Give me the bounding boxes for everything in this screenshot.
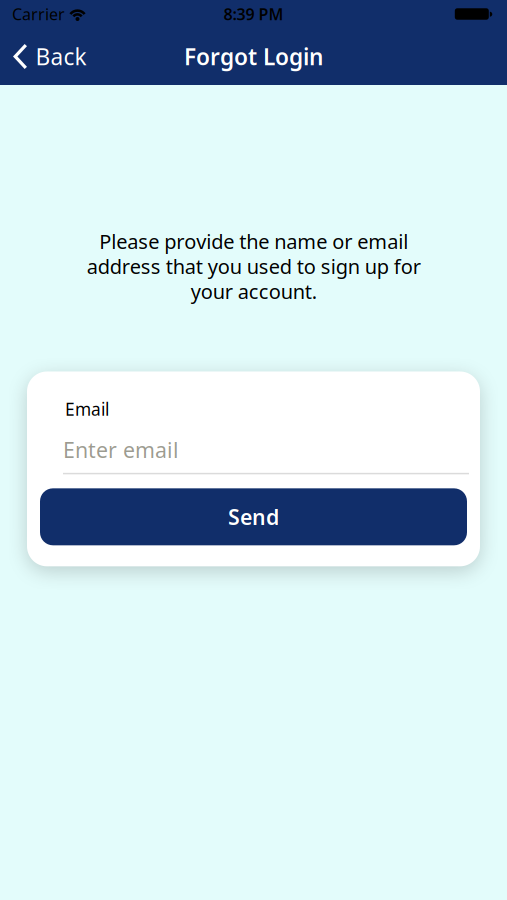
staticText: Send	[228, 503, 279, 531]
textField[interactable]: Enter email	[63, 435, 480, 464]
staticText: Enter email	[63, 435, 179, 464]
button[interactable]: Back	[0, 41, 94, 71]
staticText: 8:39 PM	[223, 3, 283, 25]
button[interactable]: Send	[40, 488, 467, 545]
staticText: Carrier	[12, 3, 65, 25]
staticText: Email	[65, 397, 109, 420]
staticText: Forgot Login	[184, 41, 323, 71]
staticText: Back	[35, 41, 86, 71]
staticText: Please provide the name or email address…	[86, 228, 420, 304]
